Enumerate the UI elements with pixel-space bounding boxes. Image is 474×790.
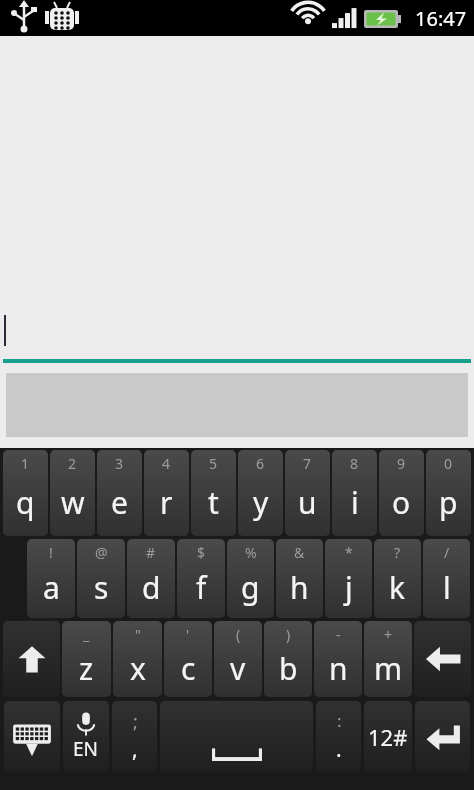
button[interactable]: % (227, 539, 274, 618)
button[interactable]: 8 (332, 450, 377, 536)
staticText: 4 (162, 454, 171, 473)
staticText: 0 (444, 454, 453, 473)
staticText: 9 (397, 454, 406, 473)
staticText: - (336, 625, 341, 644)
staticText: 8 (350, 454, 359, 473)
staticText: ( (236, 625, 241, 644)
staticText: k (389, 567, 406, 608)
button[interactable]: Space (160, 701, 313, 772)
button[interactable]: - (314, 621, 362, 697)
staticText: / (444, 543, 450, 562)
staticText: m (374, 648, 403, 689)
button[interactable]: 3 (97, 450, 142, 536)
staticText: r (160, 482, 173, 523)
staticText: h (290, 567, 309, 608)
button[interactable]: + (364, 621, 412, 697)
button[interactable]: Voice input (63, 701, 109, 772)
staticText: e (111, 482, 128, 523)
staticText: q (16, 482, 35, 523)
button[interactable]: ; (112, 701, 157, 772)
staticText: $ (197, 543, 206, 562)
staticText: x (130, 648, 146, 689)
staticText: ' (186, 625, 190, 644)
staticText: 16:47 (415, 5, 467, 32)
staticText: z (79, 648, 94, 689)
button[interactable]: 5 (191, 450, 236, 536)
staticText: : (337, 709, 342, 732)
button[interactable]: $ (177, 539, 225, 618)
button[interactable]: ? (374, 539, 421, 618)
button[interactable]: & (276, 539, 323, 618)
staticText: 6 (256, 454, 265, 473)
button[interactable]: Enter (415, 701, 470, 772)
staticText: , (132, 735, 138, 764)
button[interactable]: 6 (238, 450, 283, 536)
staticText: ? (394, 543, 401, 562)
staticText: " (135, 625, 141, 644)
staticText: s (94, 567, 109, 608)
staticText: b (279, 648, 298, 689)
staticText: ! (49, 543, 53, 562)
staticText: w (61, 482, 85, 523)
button[interactable]: 1 (3, 450, 48, 536)
staticText: n (329, 648, 348, 689)
button[interactable]: ) (264, 621, 312, 697)
button[interactable]: # (127, 539, 175, 618)
staticText: . (336, 735, 342, 764)
staticText: EN (73, 736, 99, 762)
staticText: o (392, 482, 411, 523)
staticText: u (298, 482, 317, 523)
staticText: d (142, 567, 161, 608)
staticText: 3 (115, 454, 124, 473)
staticText: ) (286, 625, 291, 644)
staticText: & (294, 543, 305, 562)
staticText: 1 (21, 454, 30, 473)
staticText: 12# (368, 722, 408, 752)
staticText: 5 (209, 454, 218, 473)
staticText: + (384, 625, 393, 644)
staticText: 7 (303, 454, 312, 473)
staticText: l (443, 567, 451, 608)
staticText: 2 (68, 454, 77, 473)
button[interactable]: " (113, 621, 162, 697)
staticText: * (345, 543, 353, 562)
button[interactable]: / (423, 539, 470, 618)
staticText: t (208, 482, 219, 523)
staticText: @ (95, 543, 108, 562)
staticText: i (351, 482, 359, 523)
button[interactable]: 9 (379, 450, 424, 536)
button[interactable]: ( (214, 621, 262, 697)
button[interactable]: Hide keyboard (4, 701, 60, 772)
button[interactable]: * (325, 539, 372, 618)
staticText: c (181, 648, 196, 689)
button[interactable]: 7 (285, 450, 330, 536)
button[interactable]: Backspace (414, 621, 471, 697)
button[interactable]: 2 (50, 450, 95, 536)
staticText: g (241, 567, 260, 608)
staticText: j (345, 567, 353, 608)
staticText: % (245, 543, 257, 562)
button[interactable]: @ (77, 539, 125, 618)
button[interactable]: Shift (3, 621, 60, 697)
staticText: f (196, 567, 207, 608)
button[interactable]: _ (62, 621, 111, 697)
button[interactable]: 12# (364, 701, 412, 772)
staticText: p (439, 482, 458, 523)
staticText: ; (133, 709, 138, 734)
staticText: v (230, 648, 246, 689)
staticText: # (146, 543, 156, 562)
button[interactable]: : (316, 701, 361, 772)
staticText: _ (83, 625, 90, 644)
button[interactable]: ! (27, 539, 75, 618)
staticText: y (253, 482, 269, 523)
staticText: a (43, 567, 60, 608)
button[interactable]: ' (164, 621, 212, 697)
button[interactable]: 4 (144, 450, 189, 536)
button[interactable]: 0 (426, 450, 471, 536)
